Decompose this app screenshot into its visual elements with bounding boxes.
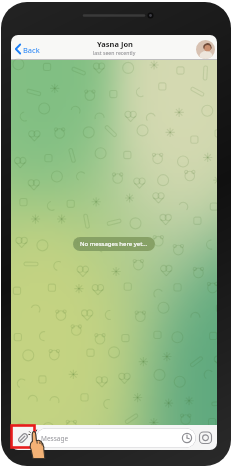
staticText: Yasna Jon (97, 39, 133, 49)
staticText: Back (23, 45, 40, 55)
button[interactable]: Message (36, 428, 196, 448)
staticText: last seen recently (93, 49, 136, 56)
staticText: No messages here yet... (80, 240, 148, 248)
button[interactable] (198, 430, 213, 445)
staticText: Message (41, 434, 69, 443)
button[interactable] (15, 430, 31, 446)
button[interactable]: Back (14, 43, 39, 55)
button[interactable] (196, 40, 215, 59)
